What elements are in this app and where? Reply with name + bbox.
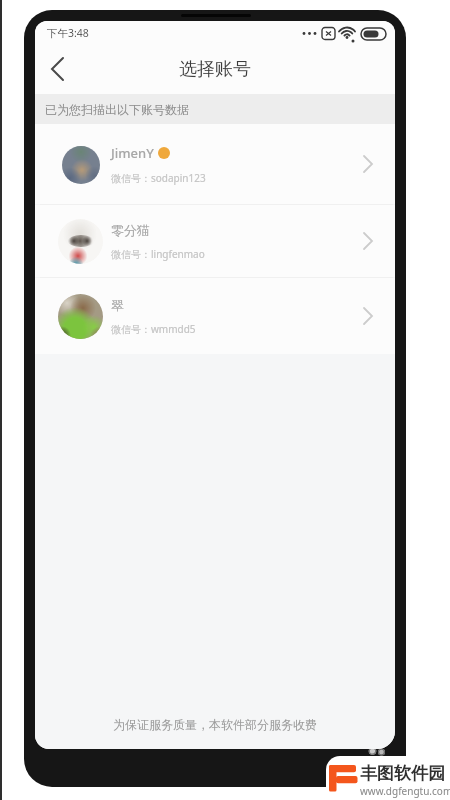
button[interactable]: 翠 bbox=[35, 278, 395, 354]
button[interactable]: 零分猫 bbox=[35, 205, 395, 277]
button[interactable] bbox=[41, 49, 77, 89]
staticText: 零分猫 bbox=[111, 222, 150, 238]
staticText: 微信号：wmmdd5 bbox=[111, 322, 196, 336]
staticText: www.dgfengtu.com bbox=[360, 784, 450, 798]
staticText: JimenY bbox=[111, 144, 154, 162]
staticText: 选择账号 bbox=[179, 58, 251, 81]
staticText: 翠 bbox=[111, 297, 124, 313]
staticText: 丰图软件园 bbox=[360, 763, 445, 784]
staticText: 为保证服务质量，本软件部分服务收费 bbox=[113, 717, 317, 732]
staticText: 微信号：lingfenmao bbox=[111, 247, 205, 261]
staticText: 微信号：sodapin123 bbox=[111, 171, 206, 185]
staticText: 下午3:48 bbox=[47, 26, 89, 40]
button[interactable]: JimenY bbox=[35, 124, 395, 204]
staticText: 已为您扫描出以下账号数据 bbox=[45, 102, 189, 117]
button[interactable]: 丰图软件园 bbox=[326, 756, 450, 800]
